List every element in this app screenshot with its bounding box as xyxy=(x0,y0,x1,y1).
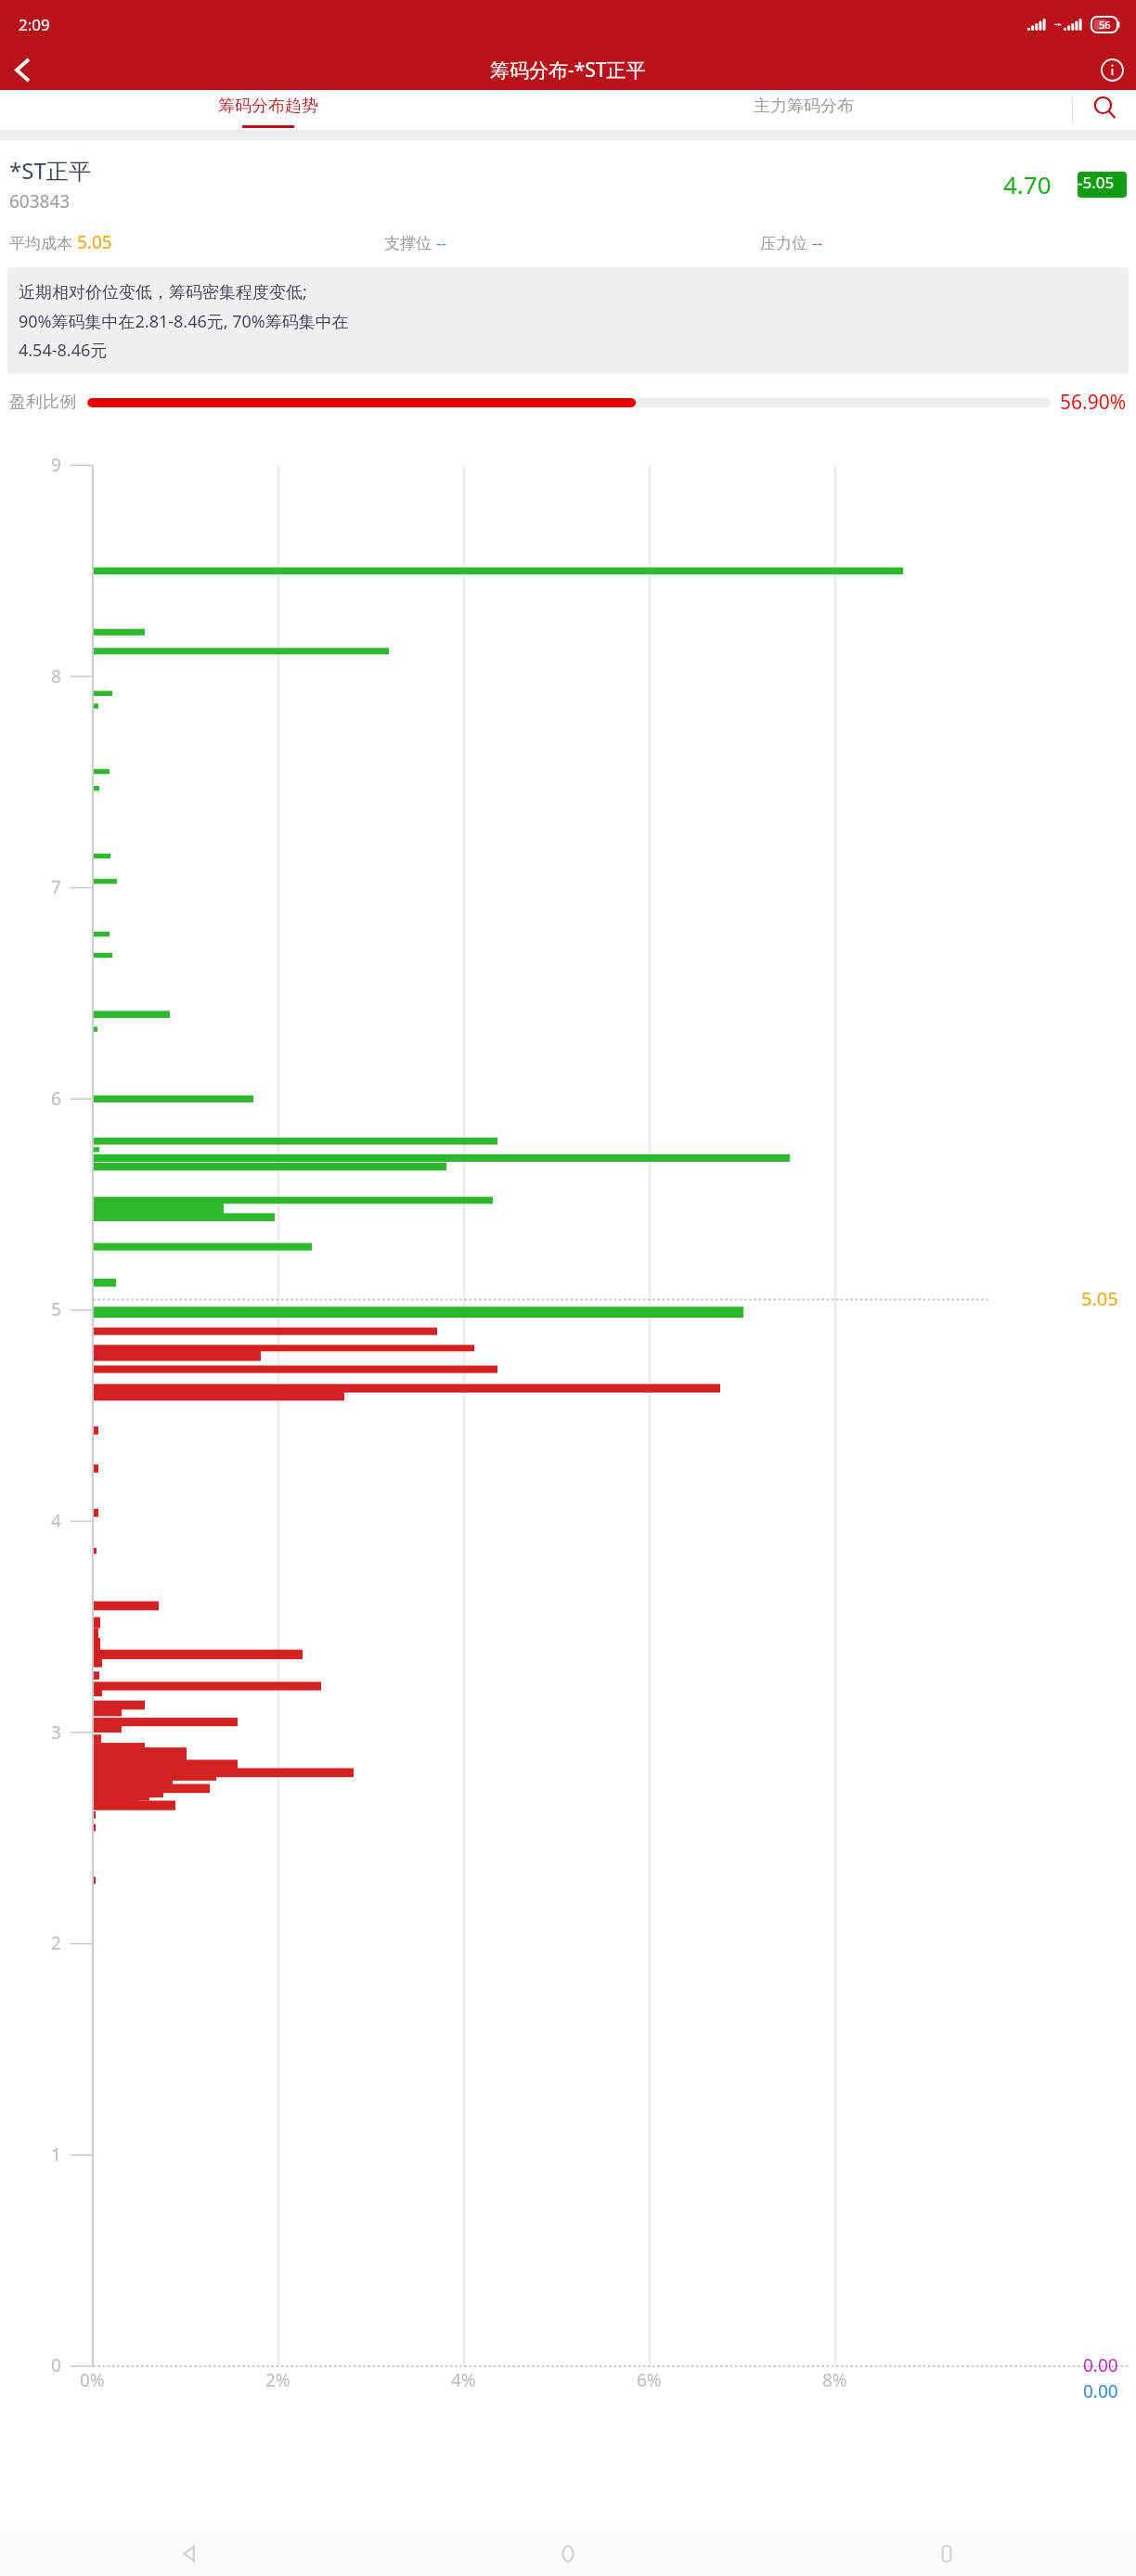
staticText: 3 xyxy=(51,1720,61,1745)
staticText: 6% xyxy=(637,2368,662,2392)
staticText: 8 xyxy=(51,664,61,689)
staticText: 0 xyxy=(51,2353,61,2377)
button[interactable]: Back xyxy=(0,49,45,90)
staticText: 0.00 xyxy=(1083,2353,1118,2377)
staticText: 56.90% xyxy=(1060,389,1127,416)
staticText: 4.70 xyxy=(1003,168,1052,200)
staticText: 0% xyxy=(80,2368,105,2392)
staticText: 近期相对价位变低，筹码密集程度变低; 90%筹码集中在2.81-8.46元, 7… xyxy=(19,280,349,361)
button[interactable]: Info xyxy=(1088,49,1136,90)
button[interactable]: Search xyxy=(1073,90,1136,130)
staticText: 603843 xyxy=(9,189,71,213)
staticText: 主力筹码分布 xyxy=(754,96,854,117)
staticText: 2% xyxy=(265,2368,290,2392)
staticText: 2:09 xyxy=(19,14,50,35)
staticText: 支撑位 xyxy=(384,232,436,253)
button[interactable]: -5.05% xyxy=(1078,172,1127,198)
staticText: 2 xyxy=(51,1931,61,1955)
button[interactable]: 筹码分布趋势 xyxy=(0,90,536,130)
staticText: 56 xyxy=(1099,18,1111,32)
staticText: -- xyxy=(812,232,822,253)
staticText: 1 xyxy=(51,2143,61,2167)
staticText: 0.00 xyxy=(1083,2379,1118,2403)
staticText: 筹码分布趋势 xyxy=(218,96,318,117)
staticText: 筹码分布-*ST正平 xyxy=(490,57,646,84)
staticText: 6 xyxy=(51,1087,61,1111)
staticText: 8% xyxy=(822,2368,847,2392)
staticText: -5.05% xyxy=(1078,172,1127,198)
staticText: 9 xyxy=(51,453,61,477)
staticText: 4 xyxy=(51,1509,61,1533)
staticText: 4% xyxy=(451,2368,476,2392)
staticText: 5.05 xyxy=(77,230,112,254)
staticText: 平均成本 xyxy=(9,232,77,253)
button[interactable]: 主力筹码分布 xyxy=(536,90,1072,130)
staticText: 压力位 xyxy=(760,232,812,253)
staticText: 盈利比例 xyxy=(9,392,76,413)
staticText: 5 xyxy=(51,1297,61,1321)
staticText: 7 xyxy=(51,875,61,899)
staticText: -- xyxy=(436,232,446,253)
staticText: 5.05 xyxy=(1081,1286,1118,1311)
staticText: *ST正平 xyxy=(9,155,91,186)
